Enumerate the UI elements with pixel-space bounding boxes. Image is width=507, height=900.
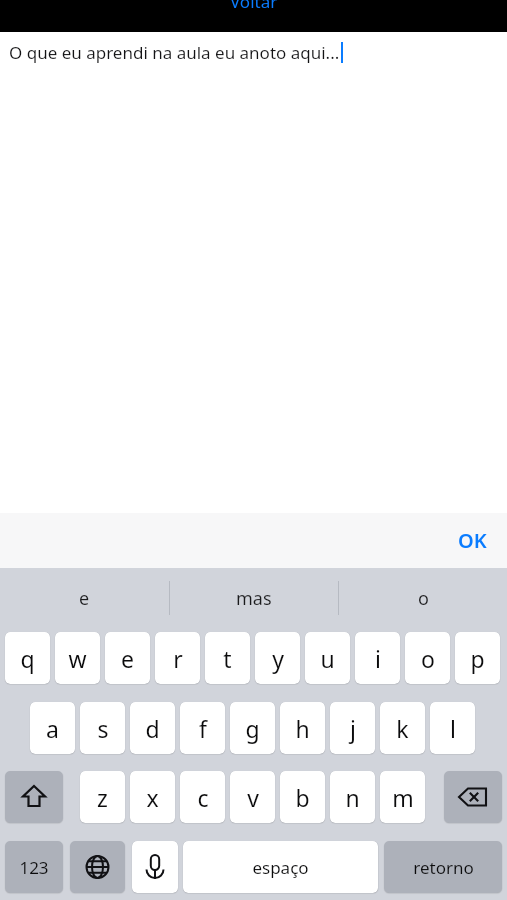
staticText: OK: [458, 527, 487, 554]
button[interactable]: e: [0, 568, 169, 628]
button[interactable]: b: [280, 771, 325, 823]
staticText: z: [97, 782, 108, 813]
staticText: t: [223, 643, 232, 674]
button[interactable]: k: [380, 702, 425, 754]
staticText: Voltar: [230, 0, 278, 13]
button[interactable]: w: [55, 632, 100, 684]
staticText: o: [421, 643, 435, 674]
button[interactable]: OK: [438, 517, 507, 564]
button[interactable]: a: [30, 702, 75, 754]
button[interactable]: m: [380, 771, 425, 823]
staticText: e: [79, 586, 90, 611]
button[interactable]: O que eu aprendi na aula eu anoto aqui..…: [9, 41, 343, 64]
staticText: h: [295, 713, 310, 744]
staticText: g: [245, 713, 260, 744]
button[interactable]: Backspace: [444, 771, 502, 823]
staticText: m: [392, 782, 414, 813]
button[interactable]: y: [255, 632, 300, 684]
staticText: espaço: [252, 856, 309, 879]
button[interactable]: v: [230, 771, 275, 823]
button[interactable]: o: [405, 632, 450, 684]
button[interactable]: u: [305, 632, 350, 684]
button[interactable]: t: [205, 632, 250, 684]
button[interactable]: Change keyboard language: [70, 841, 125, 893]
staticText: retorno: [413, 856, 474, 879]
button[interactable]: x: [130, 771, 175, 823]
staticText: o: [418, 586, 429, 611]
button[interactable]: o: [339, 568, 507, 628]
button[interactable]: p: [455, 632, 500, 684]
staticText: u: [320, 643, 335, 674]
staticText: l: [450, 713, 456, 744]
staticText: r: [173, 643, 183, 674]
staticText: x: [146, 782, 159, 813]
button[interactable]: Shift: [5, 771, 63, 823]
button[interactable]: 123: [5, 841, 63, 893]
staticText: n: [345, 782, 360, 813]
button[interactable]: Dictate: [132, 841, 178, 893]
staticText: k: [396, 713, 409, 744]
button[interactable]: d: [130, 702, 175, 754]
button[interactable]: f: [180, 702, 225, 754]
staticText: O que eu aprendi na aula eu anoto aqui..…: [9, 41, 340, 64]
staticText: b: [295, 782, 310, 813]
staticText: f: [199, 713, 207, 744]
staticText: mas: [236, 586, 272, 611]
staticText: j: [350, 713, 356, 744]
button[interactable]: s: [80, 702, 125, 754]
button[interactable]: n: [330, 771, 375, 823]
staticText: e: [121, 643, 134, 674]
staticText: c: [197, 782, 209, 813]
button[interactable]: r: [155, 632, 200, 684]
button[interactable]: c: [180, 771, 225, 823]
staticText: v: [247, 782, 259, 813]
button[interactable]: z: [80, 771, 125, 823]
staticText: q: [20, 643, 35, 674]
button[interactable]: h: [280, 702, 325, 754]
button[interactable]: q: [5, 632, 50, 684]
button[interactable]: espaço: [183, 841, 378, 893]
staticText: a: [46, 713, 59, 744]
staticText: d: [145, 713, 160, 744]
button[interactable]: j: [330, 702, 375, 754]
staticText: w: [68, 643, 87, 674]
staticText: y: [272, 643, 284, 674]
staticText: s: [97, 713, 109, 744]
button[interactable]: g: [230, 702, 275, 754]
button[interactable]: retorno: [384, 841, 502, 893]
staticText: p: [470, 643, 485, 674]
button[interactable]: e: [105, 632, 150, 684]
button[interactable]: l: [430, 702, 475, 754]
button[interactable]: Voltar: [222, 0, 286, 13]
button[interactable]: i: [355, 632, 400, 684]
staticText: 123: [19, 856, 49, 879]
button[interactable]: mas: [170, 568, 338, 628]
staticText: i: [375, 643, 381, 674]
